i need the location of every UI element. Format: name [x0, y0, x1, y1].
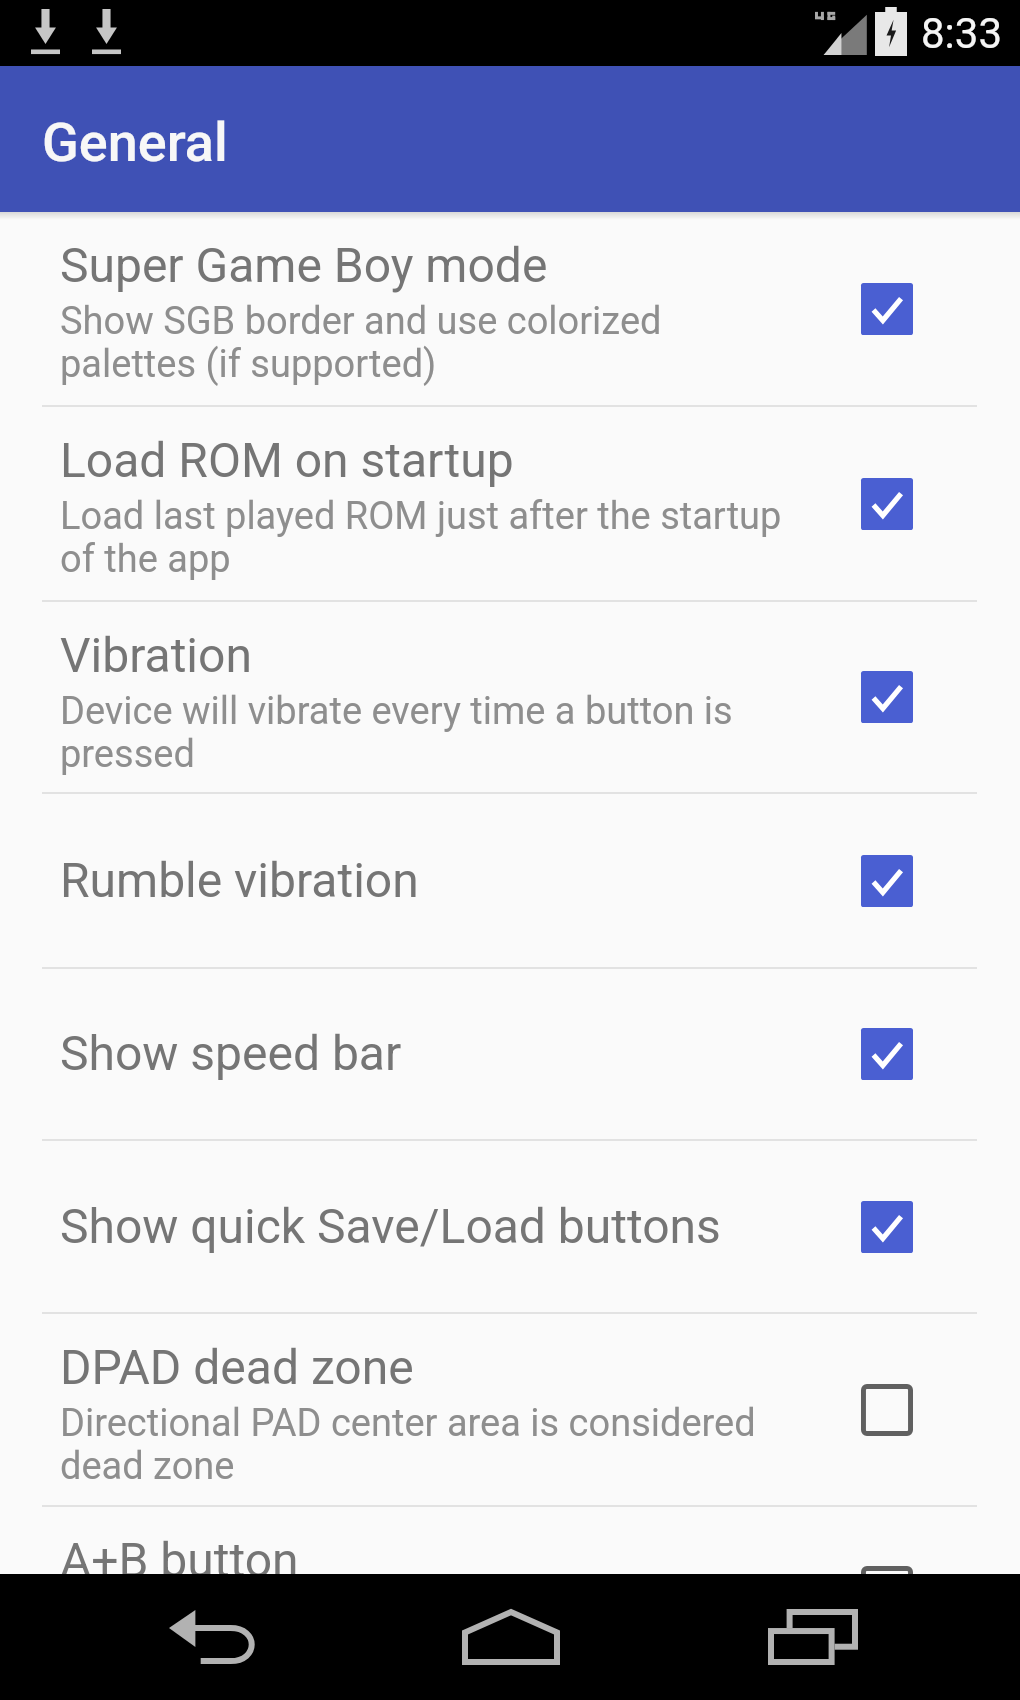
staticText: DPAD dead zone [60, 1339, 790, 1395]
staticText: 8:33 [921, 9, 1002, 58]
button[interactable]: Recent apps [753, 1596, 873, 1678]
staticText: A+B button [60, 1532, 790, 1574]
staticText: Show SGB border and use colorized palett… [60, 299, 790, 386]
staticText: Device will vibrate every time a button … [60, 689, 790, 776]
staticText: Directional PAD center area is considere… [60, 1401, 790, 1488]
button[interactable]: Show speed bar [0, 969, 1020, 1139]
button[interactable]: Home [451, 1596, 571, 1678]
button[interactable]: DPAD dead zone [0, 1314, 1020, 1505]
button[interactable]: Show quick Save/Load buttons [0, 1141, 1020, 1312]
button[interactable]: Vibration [0, 602, 1020, 792]
button[interactable]: Rumble vibration [0, 794, 1020, 967]
button[interactable]: Super Game Boy mode [0, 212, 1020, 405]
staticText: Show quick Save/Load buttons [60, 1198, 790, 1254]
staticText: Vibration [60, 627, 790, 683]
staticText: General [42, 111, 228, 174]
staticText: Load last played ROM just after the star… [60, 494, 790, 581]
staticText: Rumble vibration [60, 852, 790, 908]
staticText: Super Game Boy mode [60, 237, 790, 293]
staticText: Load ROM on startup [60, 432, 790, 488]
staticText: Show speed bar [60, 1025, 790, 1081]
button[interactable]: A+B button [0, 1507, 1020, 1574]
button[interactable]: Back [153, 1596, 273, 1678]
button[interactable]: Load ROM on startup [0, 407, 1020, 600]
